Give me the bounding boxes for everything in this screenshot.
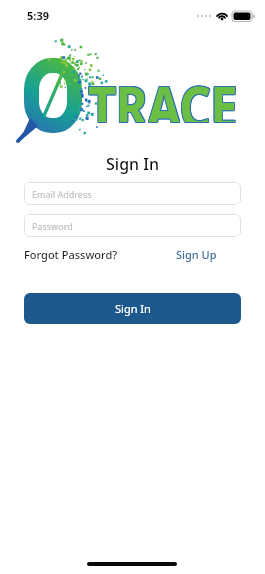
button[interactable]: Sign Up bbox=[176, 247, 217, 262]
staticText: Sign Up bbox=[176, 247, 217, 262]
staticText: TRACE bbox=[87, 65, 237, 121]
staticText: TRACE bbox=[87, 66, 237, 122]
staticText: Email Address bbox=[32, 188, 92, 200]
button[interactable]: Email Address bbox=[24, 182, 241, 205]
staticText: 5:39 bbox=[27, 8, 49, 23]
staticText: Sign In bbox=[115, 301, 151, 316]
staticText: TRACE bbox=[89, 66, 238, 122]
button[interactable]: Sign In bbox=[24, 293, 241, 324]
button[interactable]: Forgot Password? bbox=[24, 247, 118, 262]
staticText: TRACE bbox=[88, 67, 238, 123]
staticText: TRACE bbox=[89, 67, 238, 123]
staticText: TRACE bbox=[87, 67, 237, 123]
staticText: TRACE bbox=[88, 66, 238, 122]
staticText: Password bbox=[32, 220, 73, 232]
staticText: TRACE bbox=[88, 65, 238, 121]
staticText: Forgot Password? bbox=[24, 247, 118, 262]
staticText: Sign In bbox=[0, 153, 265, 175]
button[interactable]: Password bbox=[24, 214, 241, 237]
staticText: TRACE bbox=[89, 65, 238, 121]
